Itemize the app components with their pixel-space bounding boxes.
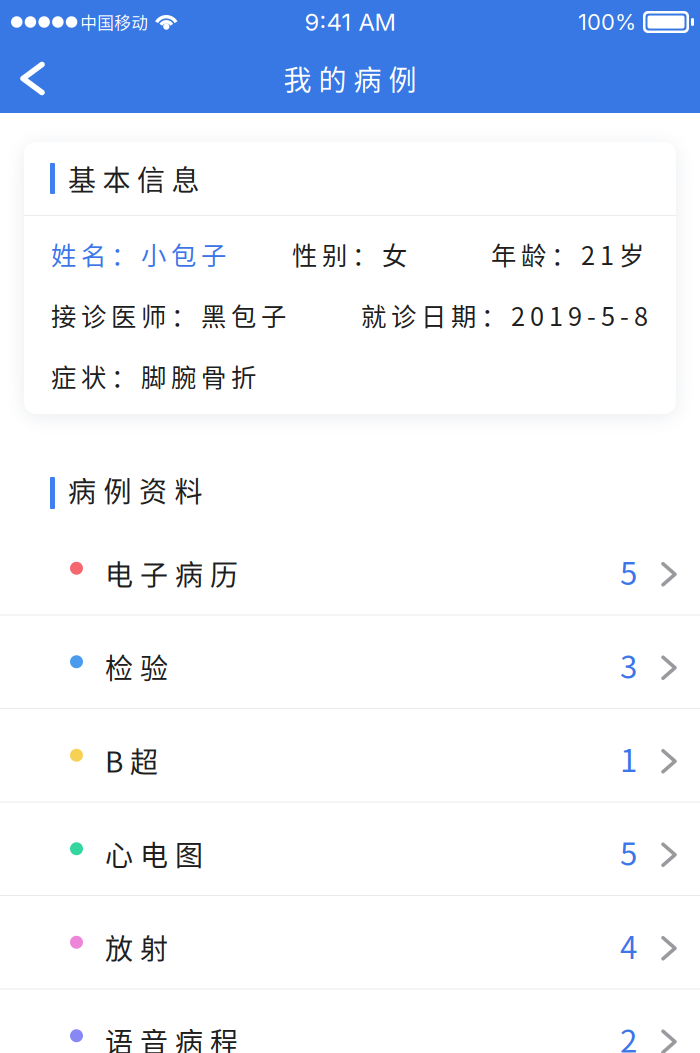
staticText: 就诊日期：2019-5-8: [361, 297, 648, 333]
staticText: 5: [620, 829, 637, 874]
staticText: 放射: [105, 927, 168, 967]
staticText: 中国移动: [80, 10, 148, 34]
staticText: 2: [620, 1016, 637, 1053]
staticText: 心电图: [105, 833, 203, 874]
staticText: 9:41 AM: [304, 7, 395, 36]
staticText: 症状：脚腕骨折: [51, 358, 256, 394]
staticText: 姓名：小包子: [51, 236, 226, 272]
staticText: 年龄：21岁: [491, 236, 644, 272]
staticText: 5: [620, 549, 637, 594]
button[interactable]: 心电图: [0, 802, 700, 896]
button[interactable]: 放射: [0, 896, 700, 989]
staticText: 我的病例: [283, 58, 416, 99]
staticText: 100%: [578, 9, 636, 35]
staticText: 检验: [105, 646, 168, 687]
staticText: 电子病历: [105, 553, 238, 593]
staticText: 3: [620, 642, 637, 687]
staticText: 4: [620, 923, 637, 968]
staticText: 性别：女: [292, 236, 407, 272]
button[interactable]: B超: [0, 709, 700, 802]
button[interactable]: Back: [0, 46, 61, 110]
button[interactable]: 语音病程: [0, 989, 700, 1053]
staticText: 接诊医师：黑包子: [51, 297, 286, 333]
staticText: 语音病程: [105, 1020, 238, 1053]
staticText: 基本信息: [68, 158, 199, 199]
staticText: 1: [620, 736, 637, 781]
staticText: 病例资料: [68, 470, 202, 510]
staticText: B超: [105, 740, 158, 780]
button[interactable]: 检验: [0, 615, 700, 709]
button[interactable]: 电子病历: [0, 522, 700, 615]
